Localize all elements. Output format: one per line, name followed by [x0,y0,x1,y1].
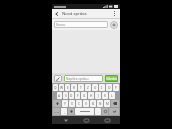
staticText: , [64,110,65,114]
button[interactable]: Komu [54,21,108,28]
staticText: Q [54,86,57,90]
button[interactable]: Z [85,84,91,91]
staticText: J [98,94,99,98]
button[interactable]: G [81,92,87,99]
staticText: K [104,94,106,98]
staticText: Odeslat [106,77,117,81]
staticText: Y [64,102,66,106]
button[interactable]: Space [75,108,94,115]
button[interactable]: Napište zprávu [64,75,103,82]
button[interactable]: D [69,92,74,99]
staticText: L [111,94,113,98]
staticText: P [115,86,117,90]
staticText: ?123 [54,110,60,113]
button[interactable]: T [78,84,84,91]
button[interactable]: Recents [100,116,114,124]
button[interactable]: Back [52,9,61,18]
button[interactable]: Enter [109,108,119,115]
button[interactable]: M [104,100,110,107]
button[interactable]: Add recipient [110,21,118,29]
staticText: C [78,102,81,106]
button[interactable]: C [76,100,82,107]
staticText: R [73,86,75,90]
staticText: A [58,94,61,98]
staticText: U [94,86,97,90]
staticText: I [101,86,103,90]
staticText: M [106,102,109,106]
button[interactable]: Emoji [102,108,108,115]
staticText: . [98,110,99,114]
button[interactable]: Back [59,116,73,124]
button[interactable]: Odeslat [105,75,118,82]
button[interactable]: V [83,100,89,107]
button[interactable]: Y [62,100,68,107]
staticText: W [60,86,63,90]
staticText: N [99,102,102,106]
button[interactable]: U [92,84,98,91]
button[interactable]: F [75,92,80,99]
staticText: O [108,86,111,90]
staticText: X [71,102,73,106]
button[interactable]: B [90,100,96,107]
staticText: Z [87,86,89,90]
staticText: Komu [56,22,66,27]
staticText: F [77,94,79,98]
button[interactable]: E [65,84,70,91]
button[interactable]: P [113,84,119,91]
button[interactable]: Home [79,116,93,124]
button[interactable]: Settings [68,108,74,115]
button[interactable]: Symbols [53,108,60,115]
button[interactable]: H [88,92,94,99]
button[interactable]: L [109,92,115,99]
button[interactable]: W [59,84,64,91]
staticText: E [67,86,69,90]
button[interactable]: Attach [54,75,62,82]
button[interactable]: More options [110,9,119,18]
button[interactable]: X [69,100,75,107]
staticText: G [83,94,86,98]
button[interactable]: Backspace [111,100,119,107]
staticText: Napište zprávu [66,77,89,81]
button[interactable]: , [61,108,67,115]
button[interactable]: J [95,92,101,99]
button[interactable]: Shift [53,100,61,107]
button[interactable]: R [71,84,77,91]
button[interactable]: K [102,92,108,99]
button[interactable]: N [97,100,103,107]
staticText: Nová zpráva [62,11,87,17]
staticText: H [90,94,93,98]
staticText: D [70,94,73,98]
button[interactable]: . [95,108,101,115]
button[interactable]: O [106,84,112,91]
button[interactable]: Q [53,84,58,91]
staticText: B [92,102,95,106]
button[interactable]: S [63,92,68,99]
staticText: V [85,102,87,106]
button[interactable]: I [99,84,105,91]
staticText: S [65,94,67,98]
button[interactable]: A [57,92,62,99]
staticText: T [80,86,82,90]
